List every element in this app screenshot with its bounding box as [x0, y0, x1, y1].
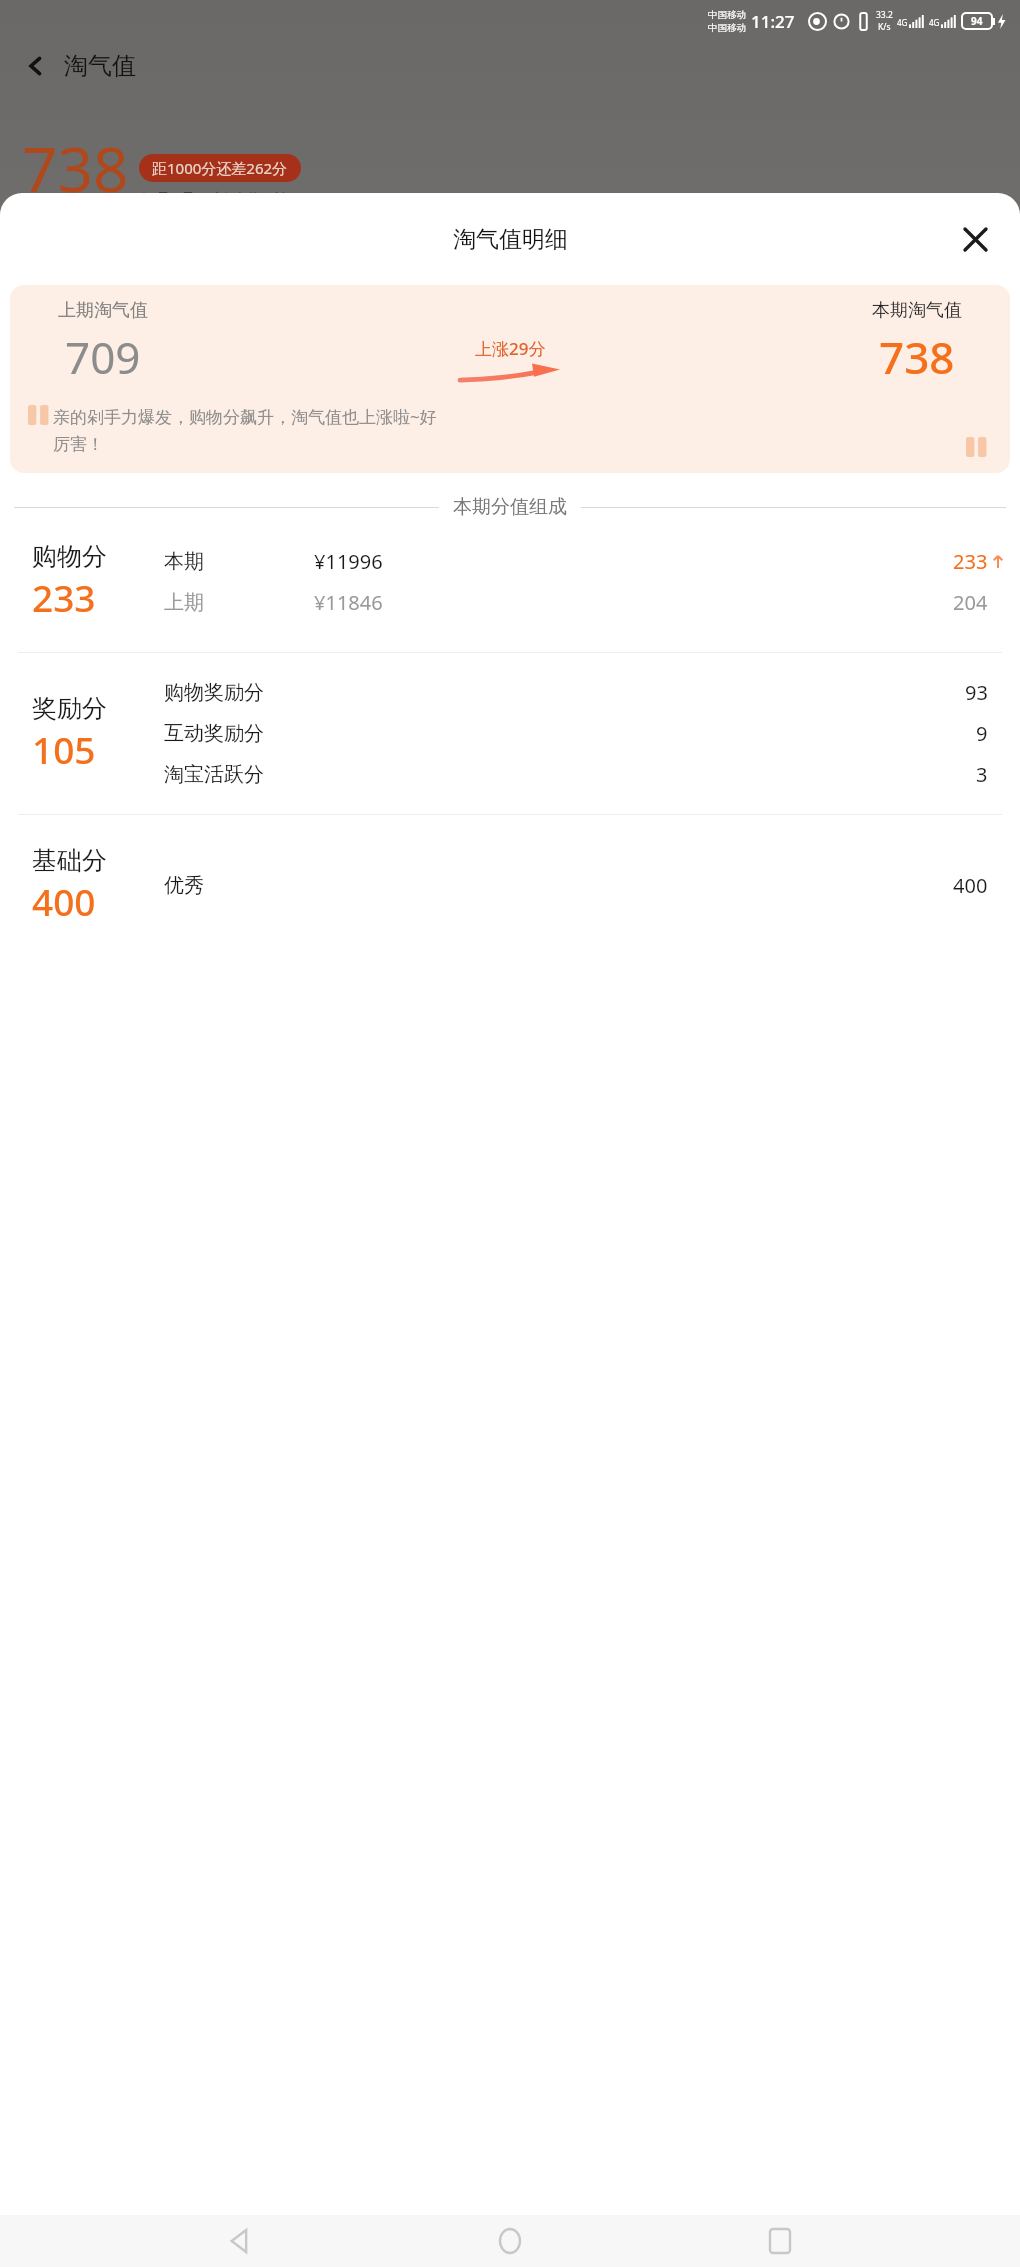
staticText: 33.2 [876, 9, 893, 21]
staticText: 互动奖励分 [164, 721, 264, 746]
staticText: 淘气值明细 [453, 225, 568, 254]
staticText: 3 [976, 761, 988, 788]
staticText: 奖励分 [32, 693, 107, 724]
staticText: 距1000分还差262分 [152, 158, 288, 178]
staticText: 上涨29分 [475, 337, 546, 360]
staticText: 11:27 [751, 10, 795, 33]
staticText: ¥11996 [314, 548, 953, 575]
staticText: 本期 [164, 549, 314, 574]
staticText: 4G [897, 17, 908, 28]
staticText: 中国移动 [708, 9, 746, 21]
staticText: 购物分 [32, 541, 107, 572]
staticText: K/s [878, 21, 891, 33]
staticText: ¥11846 [314, 589, 953, 616]
staticText: 中国移动 [708, 22, 746, 34]
staticText: 4G [929, 17, 940, 28]
staticText: 本期淘气值 [872, 299, 962, 322]
staticText: 每月8号更新 本期时间2022.10-2023.9 [139, 188, 411, 210]
staticText: 94 [971, 14, 983, 28]
staticText: 233 [32, 572, 96, 622]
staticText: 738 [22, 126, 129, 210]
staticText: 上期 [164, 590, 314, 615]
button[interactable]: Back [14, 44, 58, 88]
staticText: 400 [953, 872, 988, 899]
staticText: 105 [32, 724, 96, 774]
staticText: 709 [65, 327, 141, 387]
button[interactable]: Recents [750, 2215, 810, 2267]
staticText: 738 [879, 327, 955, 387]
staticText: 9 [976, 720, 988, 747]
button[interactable]: Home [480, 2215, 540, 2267]
staticText: 淘气值 [64, 51, 136, 81]
staticText: 204 [953, 589, 988, 616]
staticText: 亲的剁手力爆发，购物分飙升，淘气值也上涨啦~好 厉害！ [53, 405, 437, 455]
staticText: 上期淘气值 [58, 299, 148, 322]
staticText: 淘宝活跃分 [164, 762, 264, 787]
staticText: 优秀 [164, 873, 204, 898]
staticText: 233 [953, 548, 988, 575]
staticText: 基础分 [32, 845, 107, 876]
button[interactable]: Back [210, 2215, 270, 2267]
staticText: 购物奖励分 [164, 680, 264, 705]
button[interactable]: 上期淘气值 [10, 285, 1010, 473]
button[interactable]: Close [952, 216, 998, 262]
staticText: 本期分值组成 [453, 495, 567, 519]
staticText: 400 [32, 876, 96, 926]
staticText: 93 [965, 679, 988, 706]
